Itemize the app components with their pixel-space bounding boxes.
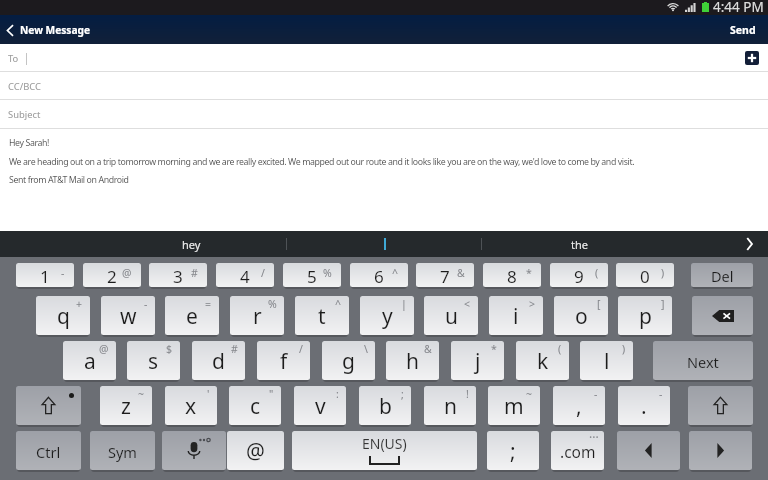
button[interactable]: Shift (16, 386, 81, 425)
staticText: n (444, 392, 457, 421)
button[interactable]: Space (292, 431, 477, 470)
staticText: % (323, 266, 332, 280)
button[interactable]: .com (551, 431, 604, 470)
staticText: # (231, 342, 238, 356)
button[interactable]: e (165, 296, 219, 335)
staticText: To (8, 52, 19, 65)
button[interactable]: Send (718, 18, 768, 42)
button[interactable]: Del (691, 263, 753, 287)
staticText: 3 (173, 265, 183, 287)
button[interactable]: Left (617, 431, 680, 470)
button[interactable]: To (0, 44, 768, 72)
button[interactable]: 8 (483, 263, 541, 287)
staticText: hey (182, 237, 201, 252)
staticText: ' (207, 387, 210, 401)
button[interactable]: New Message (0, 19, 101, 41)
button[interactable]: a (63, 341, 116, 380)
button[interactable]: w (101, 296, 155, 335)
button[interactable]: s (127, 341, 180, 380)
button[interactable]: z (100, 386, 152, 425)
button[interactable]: n (424, 386, 476, 425)
staticText: $ (166, 342, 173, 356)
staticText: @ (99, 342, 109, 356)
staticText: b (379, 392, 392, 421)
button[interactable]: 3 (149, 263, 207, 287)
button[interactable]: 6 (350, 263, 408, 287)
staticText: ^ (335, 297, 342, 311)
button[interactable]: ; (487, 431, 539, 470)
button[interactable]: d (192, 341, 245, 380)
button[interactable]: Sym (90, 431, 155, 470)
button[interactable]: , (553, 386, 605, 425)
button[interactable]: i (489, 296, 543, 335)
button[interactable]: v (294, 386, 346, 425)
button[interactable]: t (295, 296, 349, 335)
button[interactable]: m (488, 386, 540, 425)
button[interactable]: Shift (688, 386, 753, 425)
button[interactable]: 1 (16, 263, 74, 287)
button[interactable]: More suggestions (730, 231, 768, 257)
staticText: - (144, 297, 148, 311)
button[interactable]: 9 (550, 263, 608, 287)
staticText: + (76, 297, 83, 311)
button[interactable]: Next (653, 341, 753, 380)
staticText: ] (661, 297, 665, 311)
staticText: ) (622, 342, 626, 356)
staticText: 8 (507, 265, 517, 287)
button[interactable]: o (554, 296, 608, 335)
button[interactable]: h (386, 341, 439, 380)
staticText: ~ (138, 387, 145, 401)
button[interactable]: x (165, 386, 217, 425)
button[interactable]: q (36, 296, 90, 335)
staticText: .com (560, 441, 596, 462)
staticText: ; (510, 437, 516, 466)
button[interactable]: 2 (83, 263, 141, 287)
button[interactable]: Hey Sarah! (0, 128, 768, 231)
button[interactable]: hey (96, 231, 286, 257)
staticText: o (575, 302, 588, 331)
button[interactable]: y (360, 296, 414, 335)
staticText: 0 (640, 265, 650, 287)
staticText: i (513, 302, 519, 331)
staticText: EN(US) (362, 434, 407, 453)
button[interactable]: @ (227, 431, 284, 470)
button[interactable]: Add recipient (745, 51, 759, 65)
button[interactable]: 7 (416, 263, 474, 287)
staticText: m (504, 392, 524, 421)
button[interactable]: u (424, 296, 478, 335)
button[interactable]: the (482, 231, 676, 257)
staticText: u (445, 302, 458, 331)
button[interactable]: c (229, 386, 281, 425)
button[interactable]: CC/BCC (0, 72, 768, 100)
button[interactable]: b (359, 386, 411, 425)
staticText: " (269, 387, 274, 401)
staticText: q (57, 302, 70, 331)
button[interactable]: g (322, 341, 375, 380)
button[interactable]: k (516, 341, 569, 380)
staticText: Send (730, 23, 756, 37)
button[interactable]: Subject (0, 100, 768, 129)
staticText: d (212, 347, 225, 376)
button[interactable]: l (580, 341, 633, 380)
button[interactable]: p (618, 296, 672, 335)
button[interactable]: Backspace (692, 296, 753, 335)
staticText: 9 (574, 265, 584, 287)
button[interactable]: Ctrl (16, 431, 81, 470)
button[interactable]: 0 (616, 263, 674, 287)
staticText: CC/BCC (8, 80, 41, 93)
button[interactable]: 5 (283, 263, 341, 287)
button[interactable]: Right (689, 431, 752, 470)
button[interactable]: r (230, 296, 284, 335)
button[interactable]: j (451, 341, 504, 380)
button[interactable]: f (257, 341, 310, 380)
staticText: < (464, 297, 471, 311)
staticText: r (253, 302, 262, 331)
staticText: @ (122, 266, 132, 280)
button[interactable]: 4 (216, 263, 274, 287)
staticText: = (205, 297, 212, 311)
staticText: Next (687, 352, 719, 372)
button[interactable]: Voice input (162, 431, 226, 470)
staticText: > (529, 297, 536, 311)
button[interactable]: . (618, 386, 670, 425)
staticText: 4:44 PM (713, 0, 764, 13)
